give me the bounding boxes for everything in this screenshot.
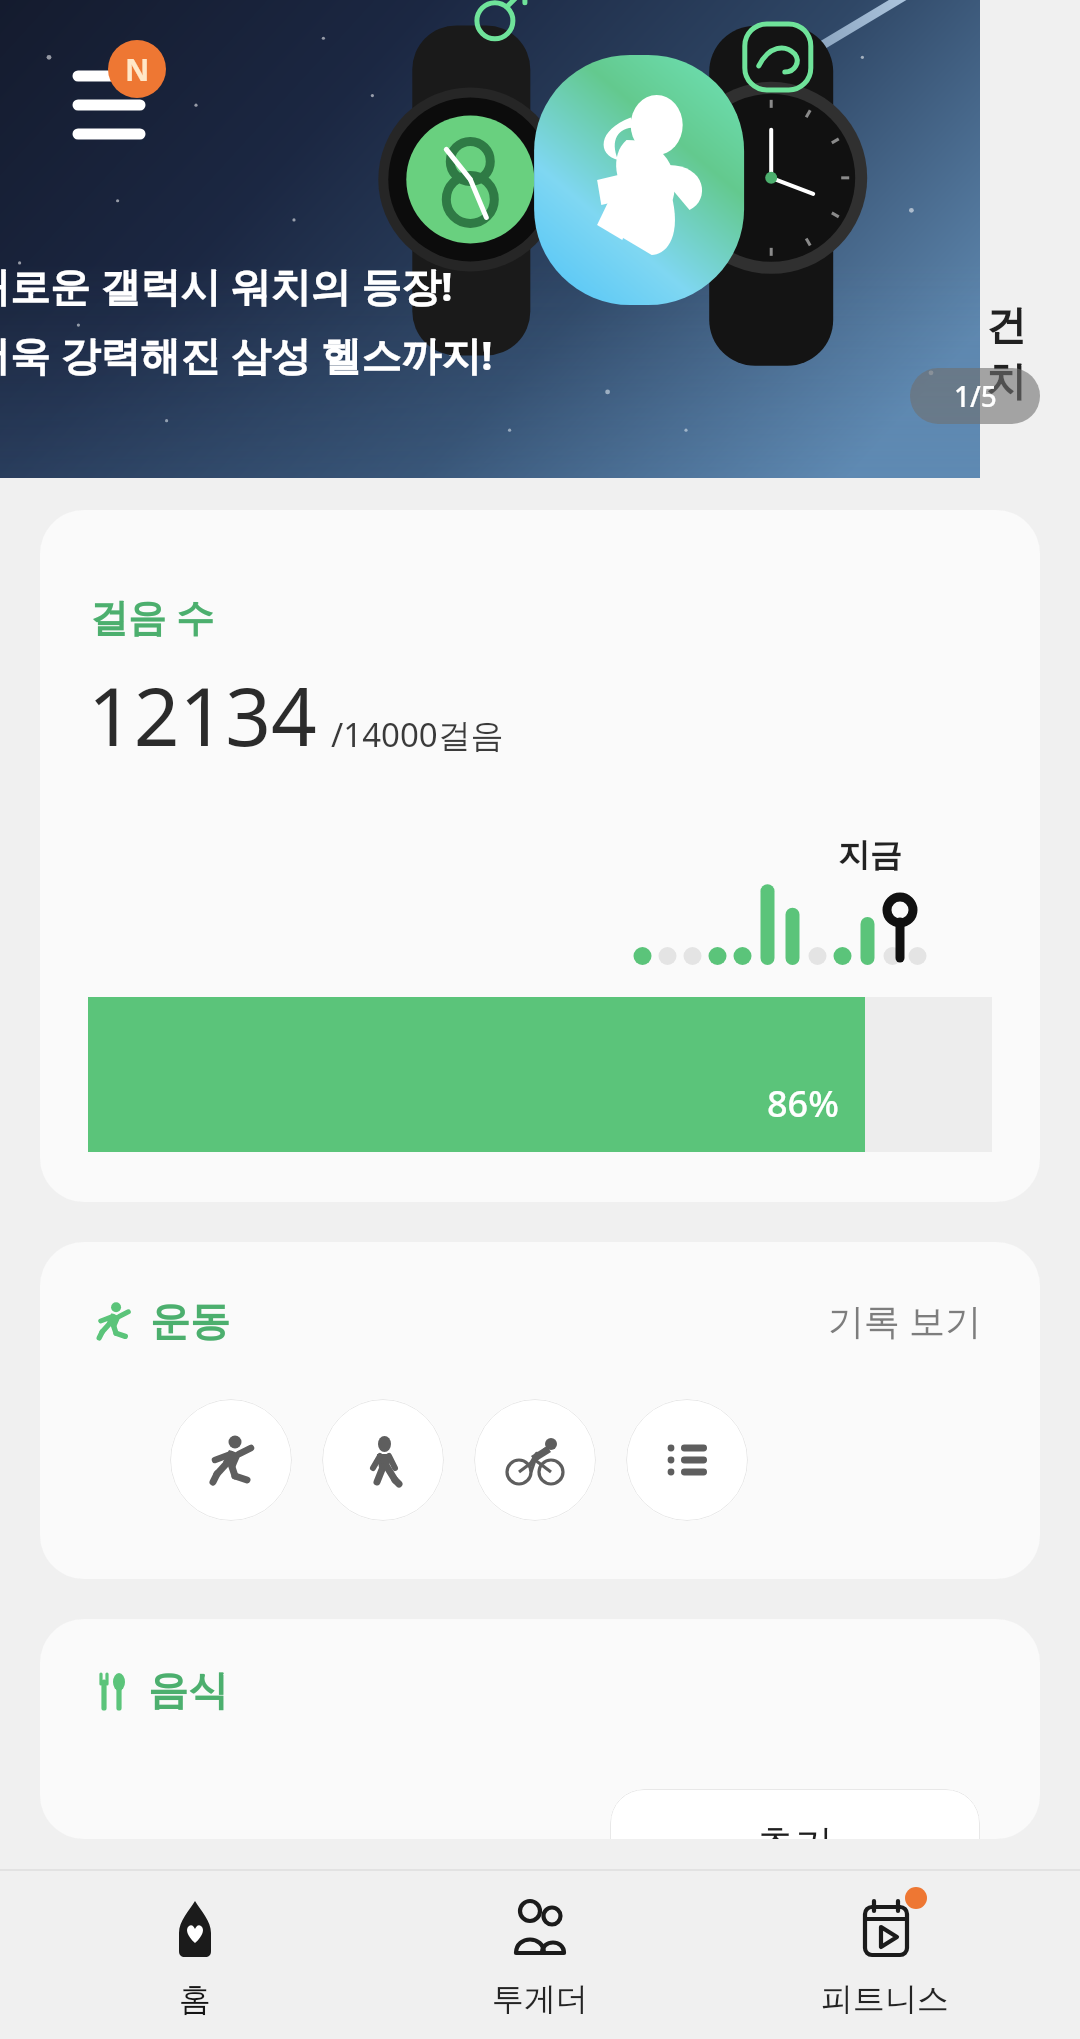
button[interactable]: 홈: [45, 1871, 345, 2039]
button[interactable]: 투게더: [390, 1871, 690, 2039]
button[interactable]: 새로운 갤럭시 워치의 등장!: [0, 0, 980, 478]
staticText: 지금: [838, 835, 902, 875]
staticText: 기록 보기: [828, 1296, 982, 1345]
staticText: 더욱 강력해진 삼성 헬스까지!: [0, 327, 493, 382]
staticText: 추가: [755, 1819, 835, 1839]
button[interactable]: 1/5: [910, 368, 1040, 424]
staticText: 새로운 갤럭시 워치의 등장!: [0, 258, 453, 313]
button[interactable]: Menu: [64, 42, 156, 138]
staticText: 운동: [150, 1296, 230, 1346]
staticText: 1/5: [954, 377, 997, 415]
button[interactable]: Walking: [322, 1399, 444, 1521]
staticText: /14000걸음: [331, 712, 504, 757]
staticText: 86%: [767, 1079, 839, 1128]
staticText: 12134: [88, 660, 317, 769]
button[interactable]: 피트니스: [735, 1871, 1035, 2039]
button[interactable]: 추가: [610, 1789, 980, 1839]
staticText: 음식: [148, 1665, 228, 1715]
button[interactable]: More exercises: [626, 1399, 748, 1521]
button[interactable]: 기록 보기: [820, 1288, 990, 1353]
button[interactable]: Running: [170, 1399, 292, 1521]
staticText: 피트니스: [821, 1979, 949, 2019]
button[interactable]: 걸음 수: [40, 510, 1040, 1202]
staticText: 걸음 수: [90, 590, 214, 642]
staticText: 건 치: [986, 300, 1026, 407]
staticText: 투게더: [492, 1979, 588, 2019]
button[interactable]: Cycling: [474, 1399, 596, 1521]
staticText: N: [125, 49, 150, 90]
staticText: 홈: [179, 1979, 211, 2019]
